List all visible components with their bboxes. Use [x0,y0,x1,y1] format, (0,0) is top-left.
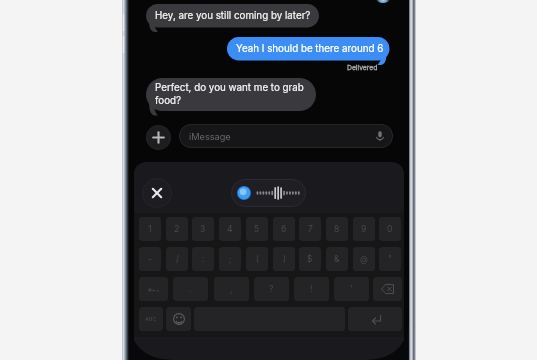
staticText: " [388,254,392,264]
button[interactable]: ( [246,247,268,271]
button[interactable]: ) [273,247,295,271]
staticText: Yeah I should be there around 6 [236,43,384,55]
button[interactable]: Symbols [139,277,168,301]
button[interactable]: 9 [353,217,375,241]
staticText: 4 [227,224,233,234]
button[interactable]: / [166,247,188,271]
staticText: : [202,254,205,264]
button[interactable]: Hey, are you still coming by later? [146,4,321,34]
staticText: Delivered [347,63,378,71]
staticText: 7 [308,224,313,234]
button[interactable]: 6 [273,217,295,241]
button[interactable]: Perfect, do you want me to grab food? [146,78,318,117]
button[interactable]: 8 [326,217,348,241]
staticText: 3 [200,224,206,234]
staticText: Perfect, do you want me to grab food? [155,82,304,107]
staticText: 1 [148,224,152,234]
button[interactable]: Add attachment [146,125,171,150]
staticText: ' [350,284,353,294]
staticText: ? [269,284,274,294]
staticText: . [189,284,192,294]
button[interactable]: 1 [139,217,161,241]
staticText: 6 [281,224,287,234]
staticText: 0 [387,224,393,234]
button[interactable]: Voice input [231,179,306,207]
staticText: 5 [254,224,260,234]
staticText: iMessage [189,131,231,142]
staticText: #+= [148,286,160,293]
button[interactable]: & [326,247,348,271]
button[interactable]: Letters [139,307,163,331]
staticText: & [334,254,340,264]
staticText: , [230,284,233,294]
staticText: - [148,254,152,264]
staticText: 8 [334,224,340,234]
staticText: @ [360,254,368,264]
staticText: ) [283,254,286,264]
staticText: ; [229,254,232,264]
button[interactable]: 4 [219,217,241,241]
button[interactable]: Close [142,178,172,208]
button[interactable]: $ [299,247,321,271]
button[interactable]: 2 [166,217,188,241]
staticText: Hey, are you still coming by later? [155,10,311,22]
staticText: ( [256,254,259,264]
button[interactable]: 7 [299,217,321,241]
staticText: / [176,254,179,264]
button[interactable]: @ [353,247,375,271]
button[interactable]: Yeah I should be there around 6 [227,37,392,67]
button[interactable]: 0 [379,217,401,241]
button[interactable]: Backspace [373,277,402,301]
staticText: 9 [361,224,367,234]
button[interactable]: iMessage text field [179,124,393,148]
staticText: $ [307,254,313,264]
staticText: ABC [145,316,157,323]
button[interactable]: 3 [192,217,214,241]
button[interactable]: Emoji [166,307,191,331]
button[interactable]: Return [348,307,402,331]
button[interactable]: 5 [246,217,268,241]
staticText: 2 [174,224,180,234]
staticText: ! [310,284,313,294]
